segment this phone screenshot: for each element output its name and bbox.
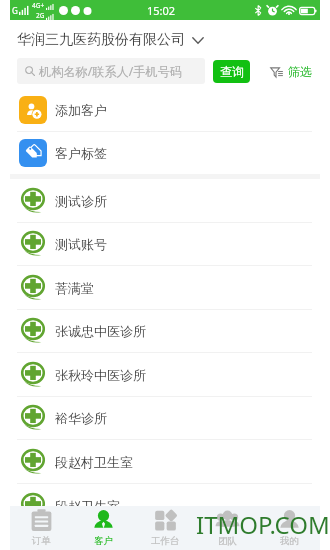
button[interactable]: 菩满堂 [10, 266, 320, 309]
staticText: 张秋玲中医诊所 [55, 367, 146, 383]
staticText: 菩满堂 [55, 280, 94, 296]
staticText: 测试账号 [55, 236, 107, 252]
staticText: 客户标签 [55, 145, 107, 161]
button[interactable]: 测试诊所 [10, 179, 320, 222]
button[interactable]: 筛选 [270, 64, 312, 79]
button[interactable]: 订单 [10, 506, 72, 550]
button[interactable]: 客户 [72, 506, 134, 550]
button[interactable]: 段赵卫生室 [10, 484, 320, 527]
button[interactable]: 张秋玲中医诊所 [10, 353, 320, 396]
staticText: 裕华诊所 [55, 410, 107, 426]
staticText: 客户 [94, 535, 113, 547]
staticText: 机构名称/联系人/手机号码 [39, 63, 183, 80]
staticText: 张诚忠中医诊所 [55, 323, 146, 339]
staticText: ITMOP.COM [196, 508, 330, 541]
staticText: 筛选 [288, 64, 312, 79]
staticText: 测试诊所 [55, 193, 107, 209]
staticText: G [12, 5, 18, 16]
button[interactable]: 团队 [196, 506, 258, 550]
staticText: 华润三九医药股份有限公司 [17, 31, 185, 49]
button[interactable]: 张诚忠中医诊所 [10, 310, 320, 352]
button[interactable]: 我的 [258, 506, 320, 550]
staticText: 工作台 [151, 535, 180, 547]
button[interactable]: 裕华诊所 [10, 397, 320, 439]
button[interactable]: 添加客户 [10, 88, 320, 131]
staticText: 段赵卫生室 [55, 498, 120, 514]
button[interactable]: 段赵村卫生室 [10, 440, 320, 483]
button[interactable]: 测试账号 [10, 223, 320, 265]
staticText: 我的 [280, 535, 299, 547]
staticText: 订单 [32, 535, 51, 547]
other: Switch company [192, 37, 204, 44]
staticText: 15:02 [147, 3, 176, 18]
staticText: 4G+ [32, 1, 45, 10]
button[interactable]: 机构名称/联系人/手机号码 [17, 58, 205, 84]
button[interactable]: 工作台 [134, 506, 196, 550]
button[interactable]: 查询 [213, 60, 250, 83]
staticText: 查询 [220, 64, 244, 79]
button[interactable]: 客户标签 [10, 132, 320, 174]
staticText: 2G [36, 11, 45, 20]
staticText: 团队 [218, 535, 237, 547]
staticText: 段赵村卫生室 [55, 454, 133, 470]
staticText: 添加客户 [55, 102, 107, 118]
